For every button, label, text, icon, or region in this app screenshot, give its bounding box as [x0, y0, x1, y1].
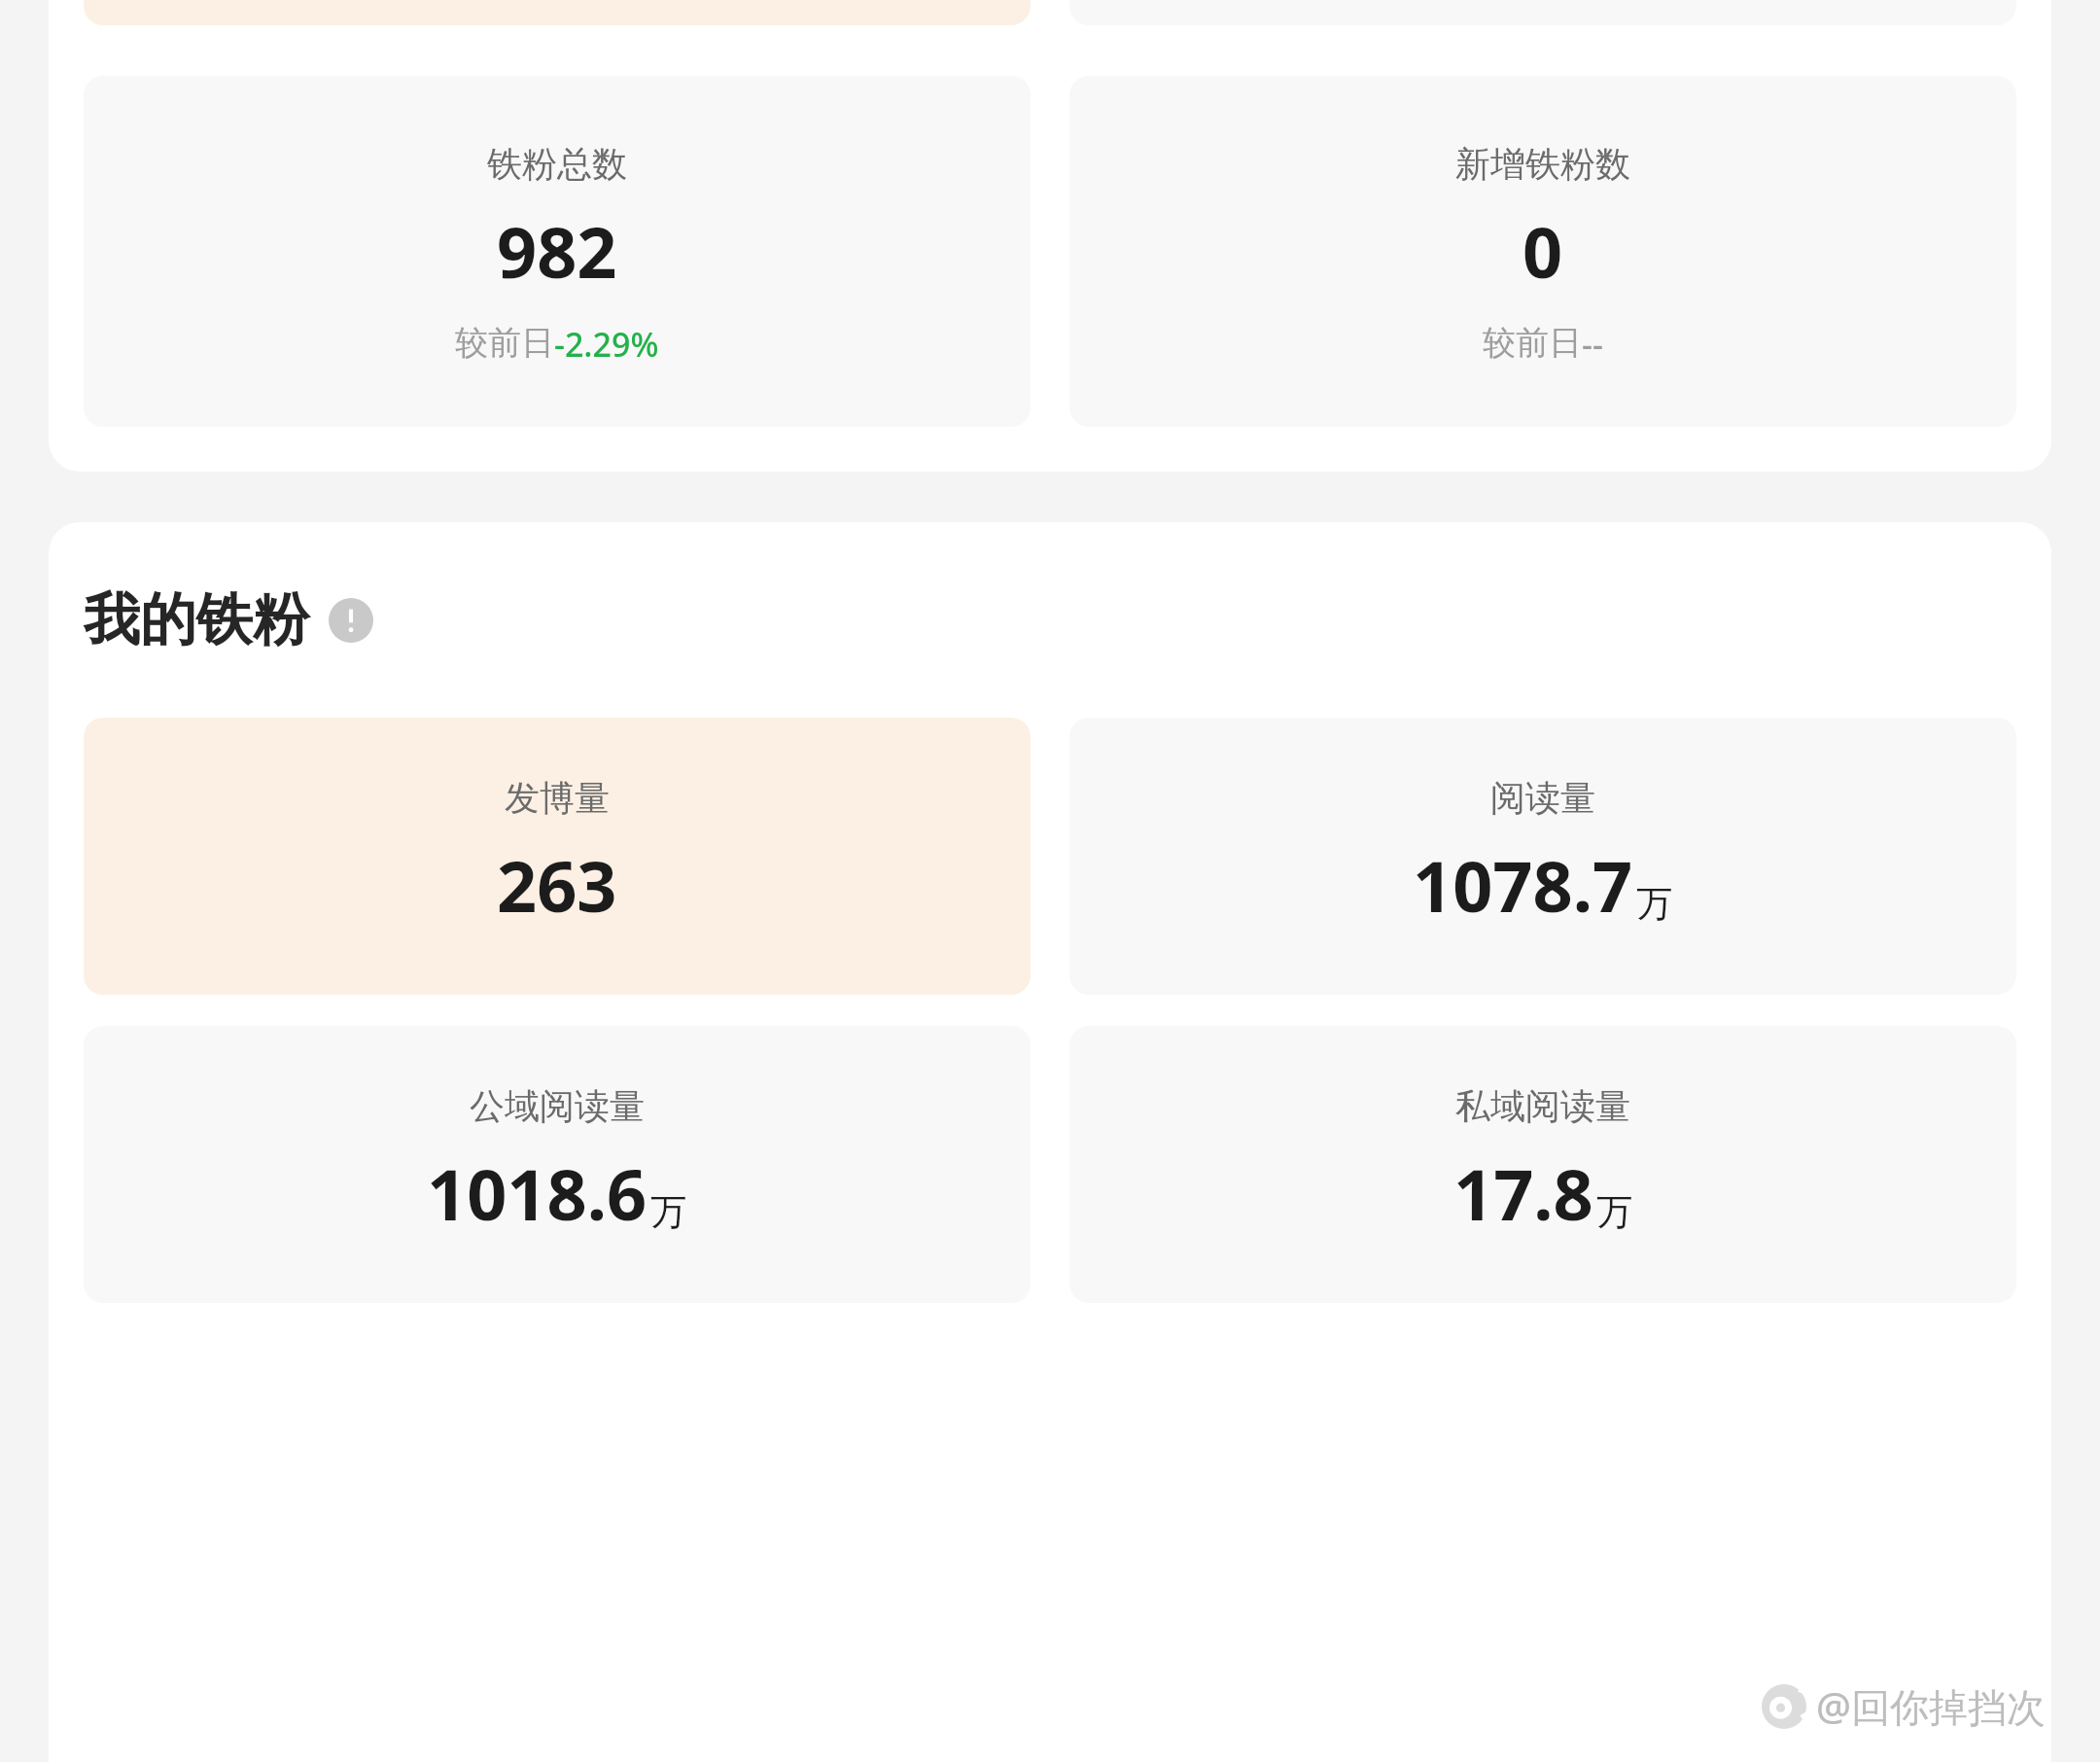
button[interactable]: 我的铁粉 — [84, 584, 373, 655]
staticText: 发博量 — [505, 776, 610, 820]
staticText: 铁粉总数 — [487, 142, 627, 186]
staticText: 0 — [1522, 203, 1563, 299]
staticText: 我的铁粉 — [84, 584, 309, 655]
other: 铁粉说明 — [329, 598, 373, 643]
staticText: 万 — [1596, 1189, 1633, 1235]
button[interactable]: 发博量 — [84, 718, 1031, 995]
staticText: 982 — [497, 203, 617, 299]
staticText: 公域阅读量 — [470, 1084, 645, 1128]
staticText: -2.29% — [554, 322, 659, 367]
staticText: 较前日 — [1483, 322, 1582, 364]
staticText: 1018.6 — [427, 1145, 647, 1241]
staticText: 较前日 — [455, 322, 554, 364]
staticText: 万 — [1636, 881, 1673, 927]
staticText: 新增铁粉数 — [1455, 142, 1630, 186]
button[interactable]: 阅读量 — [1069, 718, 2016, 995]
staticText: 万 — [650, 1189, 687, 1235]
staticText: 私域阅读量 — [1455, 1084, 1630, 1128]
button[interactable]: 新增铁粉数 — [1069, 76, 2016, 427]
button[interactable]: 铁粉总数 — [84, 76, 1031, 427]
button[interactable]: 公域阅读量 — [84, 1026, 1031, 1303]
staticText: 阅读量 — [1490, 776, 1595, 820]
staticText: 17.8 — [1453, 1145, 1593, 1241]
staticText: @回你掉挡次 — [1816, 1679, 2046, 1733]
staticText: 263 — [497, 837, 617, 933]
button[interactable]: 私域阅读量 — [1069, 1026, 2016, 1303]
staticText: 1078.7 — [1413, 837, 1633, 933]
staticText: -- — [1582, 322, 1603, 367]
